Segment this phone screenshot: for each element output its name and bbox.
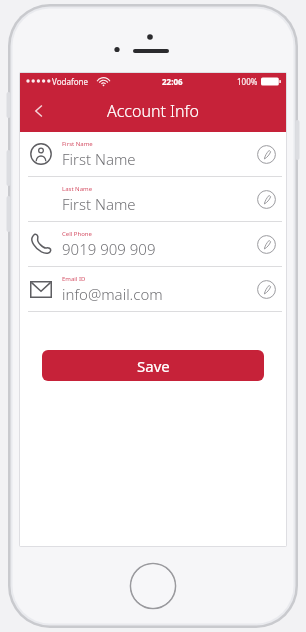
staticText: Account Info xyxy=(107,100,199,122)
button[interactable]: Cell Phone xyxy=(20,222,286,267)
button[interactable]: First Name xyxy=(20,132,286,177)
staticText: Save xyxy=(137,356,170,376)
staticText: info@mail.com xyxy=(62,284,163,304)
button[interactable]: Edit Email ID xyxy=(246,267,286,311)
staticText: First Name xyxy=(62,194,136,214)
staticText: First Name xyxy=(62,140,93,148)
button[interactable]: Email ID xyxy=(20,267,286,312)
button[interactable]: Edit Cell Phone xyxy=(246,222,286,266)
button[interactable]: Save xyxy=(42,350,264,381)
staticText: 9019 909 909 xyxy=(62,239,156,259)
staticText: First Name xyxy=(62,149,136,169)
staticText: 100% xyxy=(237,76,258,87)
staticText: Last Name xyxy=(62,185,93,193)
button[interactable]: Edit First Name xyxy=(246,132,286,176)
button[interactable]: Last Name xyxy=(20,177,286,222)
button[interactable]: Back xyxy=(20,92,58,130)
button[interactable]: Edit Last Name xyxy=(246,177,286,221)
staticText: Cell Phone xyxy=(62,230,92,238)
staticText: 22:06 xyxy=(162,76,183,87)
staticText: Vodafone xyxy=(52,76,88,87)
staticText: Email ID xyxy=(62,275,86,283)
